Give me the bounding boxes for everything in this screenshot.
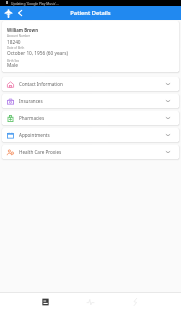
staticText: Male [7, 62, 18, 68]
staticText: Account Number [7, 34, 31, 38]
staticText: Updating 'Google Play Music'... [11, 1, 59, 5]
staticText: Patient Details [0, 9, 181, 17]
button[interactable]: Insurances [2, 94, 179, 108]
staticText: October 10, 1956 (60 years) [7, 50, 68, 56]
staticText: William Brown [7, 27, 38, 33]
button[interactable]: Appointments [2, 128, 179, 142]
button[interactable]: Application logo [4, 6, 26, 20]
staticText: Health Care Proxies [19, 149, 62, 155]
button[interactable]: Health Care Proxies [2, 145, 179, 159]
staticText: Pharmacies [19, 115, 45, 121]
staticText: Birth Sex [7, 59, 20, 63]
button[interactable]: Navigate back [15, 6, 24, 20]
button[interactable]: Contact Information [2, 77, 179, 91]
staticText: 18240 [7, 39, 21, 45]
staticText: Appointments [19, 132, 50, 138]
button[interactable]: Patients [23, 293, 68, 310]
staticText: Insurances [19, 98, 43, 104]
button[interactable]: Pharmacies [2, 111, 179, 125]
staticText: Date of Birth [7, 46, 25, 50]
staticText: Contact Information [19, 81, 63, 87]
